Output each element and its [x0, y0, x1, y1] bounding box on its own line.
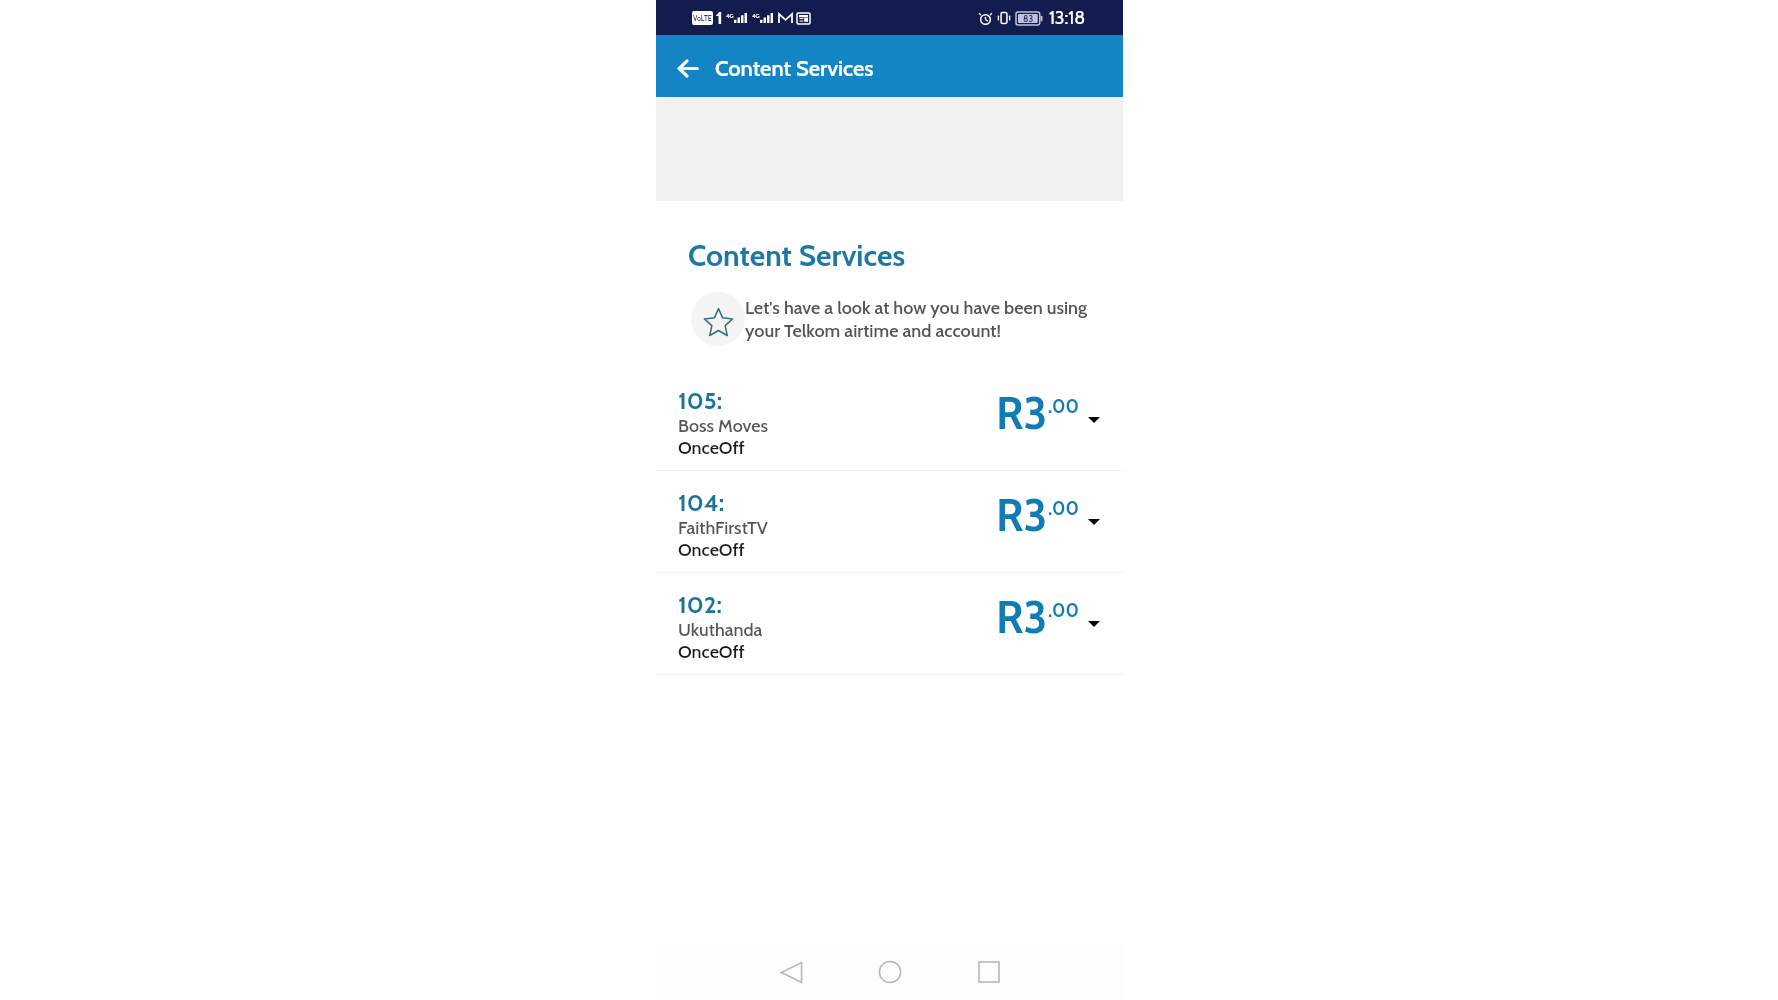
staticText: VoLTE [693, 14, 712, 23]
button[interactable]: Navigate back [767, 948, 815, 996]
button[interactable]: Home [866, 948, 914, 996]
staticText: FaithFirstTV [678, 517, 768, 539]
staticText: OnceOff [678, 437, 745, 459]
staticText: 104: [678, 488, 725, 517]
staticText: Let's have a look at how you have been u… [745, 297, 1109, 342]
button[interactable]: Expand [1079, 513, 1109, 531]
staticText: R3 [996, 591, 1048, 644]
button[interactable]: Back [669, 48, 705, 84]
button[interactable]: 102: [656, 573, 1123, 674]
staticText: 83 [1023, 13, 1034, 24]
staticText: OnceOff [678, 539, 745, 561]
staticText: Boss Moves [678, 415, 769, 437]
staticText: 13:18 [1049, 7, 1086, 29]
staticText: R3 [996, 387, 1048, 440]
staticText: .00 [1048, 497, 1079, 520]
staticText: Content Services [688, 237, 906, 273]
staticText: 4G [752, 12, 760, 19]
staticText: Ukuthanda [678, 619, 763, 641]
button[interactable]: Recents [965, 948, 1013, 996]
button[interactable]: 104: [656, 471, 1123, 572]
staticText: 4G [726, 12, 734, 19]
button[interactable]: 105: [656, 369, 1123, 470]
button[interactable]: Expand [1079, 411, 1109, 429]
staticText: OnceOff [678, 641, 745, 663]
button[interactable]: Expand [1079, 615, 1109, 633]
staticText: 105: [678, 386, 723, 415]
staticText: 102: [678, 590, 722, 619]
staticText: .00 [1048, 395, 1079, 418]
staticText: R3 [996, 489, 1048, 542]
staticText: Content Services [715, 55, 874, 82]
staticText: .00 [1048, 599, 1079, 622]
